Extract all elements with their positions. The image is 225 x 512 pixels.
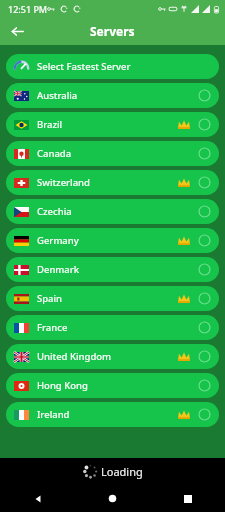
button[interactable]: Australia [6,83,219,108]
button[interactable] [198,147,211,160]
button[interactable] [198,350,211,363]
button[interactable] [198,89,211,102]
staticText: Servers [90,23,135,39]
staticText: Brazil [37,118,178,131]
button[interactable] [198,263,211,276]
button[interactable]: Spain [6,286,219,311]
staticText: Switzerland [37,176,178,189]
button[interactable]: Canada [6,141,219,166]
button[interactable] [198,205,211,218]
button[interactable] [198,379,211,392]
button[interactable]: Hong Kong [6,373,219,398]
button[interactable]: Brazil [6,112,219,137]
button[interactable]: Back [6,20,28,42]
staticText: Loading [101,464,143,479]
staticText: Canada [37,147,198,160]
button[interactable]: Home [75,485,150,512]
button[interactable]: Czechia [6,199,219,224]
staticText: Select Fastest Server [37,60,131,73]
staticText: 12:51 PM [8,3,48,15]
button[interactable] [198,176,211,189]
staticText: Czechia [37,205,198,218]
staticText: Hong Kong [37,379,198,392]
button[interactable] [198,408,211,421]
staticText: Spain [37,292,178,305]
button[interactable]: Germany [6,228,219,253]
button[interactable]: United Kingdom [6,344,219,369]
button[interactable]: Denmark [6,257,219,282]
staticText: Australia [37,89,198,102]
button[interactable]: Back [0,485,75,512]
staticText: United Kingdom [37,350,178,363]
button[interactable]: Recents [150,485,225,512]
button[interactable]: Ireland [6,402,219,427]
button[interactable]: Select Fastest Server [6,54,219,79]
button[interactable]: France [6,315,219,340]
staticText: Ireland [37,408,178,421]
button[interactable] [198,118,211,131]
staticText: Denmark [37,263,198,276]
staticText: France [37,321,198,334]
button[interactable] [198,321,211,334]
button[interactable] [198,292,211,305]
button[interactable]: Switzerland [6,170,219,195]
button[interactable] [198,234,211,247]
staticText: Germany [37,234,178,247]
